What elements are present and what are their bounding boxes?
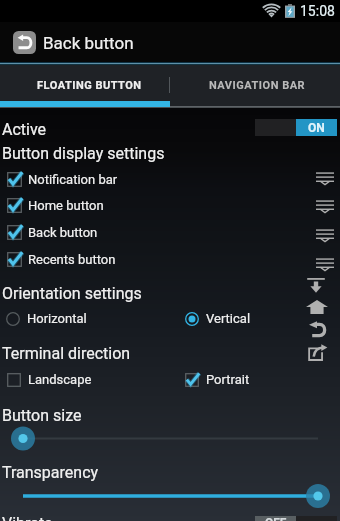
staticText: Transparency [2, 463, 99, 482]
button[interactable]: Back button [0, 219, 340, 246]
staticText: Button display settings [2, 144, 165, 163]
button[interactable]: Recents button [0, 244, 340, 275]
staticText: Vertical [206, 311, 251, 326]
button[interactable]: Reorder [313, 192, 337, 218]
button[interactable]: Horizontal [0, 304, 179, 333]
button[interactable]: Portrait [178, 364, 340, 395]
button[interactable]: Back [305, 317, 329, 341]
button[interactable]: Vertical [179, 304, 340, 333]
staticText: Home button [28, 198, 104, 213]
staticText: NAVIGATION BAR [209, 79, 306, 92]
staticText: Notification bar [28, 172, 118, 187]
staticText: Terminal direction [2, 344, 131, 363]
staticText: Back button [28, 225, 98, 240]
button[interactable]: Landscape [0, 364, 178, 395]
button[interactable]: Notification bar [0, 166, 340, 192]
button[interactable]: Recents [305, 340, 329, 364]
button[interactable]: Home [305, 295, 329, 319]
button[interactable]: Reorder [313, 164, 337, 190]
staticText: Landscape [28, 372, 92, 387]
button[interactable]: Home button [0, 192, 340, 219]
button[interactable]: Back button [13, 22, 340, 63]
button[interactable]: Reorder [313, 221, 337, 247]
staticText: FLOATING BUTTON [37, 79, 142, 92]
staticText: Portrait [206, 372, 250, 387]
staticText: Orientation settings [2, 284, 142, 303]
staticText: ON [308, 121, 325, 135]
button[interactable]: FLOATING BUTTON [0, 69, 169, 101]
button[interactable] [0, 484, 340, 508]
button[interactable]: NAVIGATION BAR [170, 69, 340, 101]
button[interactable]: ON [255, 119, 337, 136]
staticText: Vibrate [2, 514, 53, 521]
button[interactable]: Notification bar [304, 273, 328, 297]
staticText: Horizontal [27, 311, 87, 326]
staticText: Active [2, 120, 47, 139]
staticText: Back button [43, 33, 134, 53]
button[interactable] [0, 424, 340, 453]
staticText: Recents button [28, 252, 116, 267]
button[interactable]: OFF [255, 516, 337, 521]
staticText: OFF [265, 516, 287, 521]
staticText: Button size [2, 406, 82, 425]
button[interactable]: Reorder [313, 250, 337, 276]
staticText: 15:08 [300, 3, 335, 19]
